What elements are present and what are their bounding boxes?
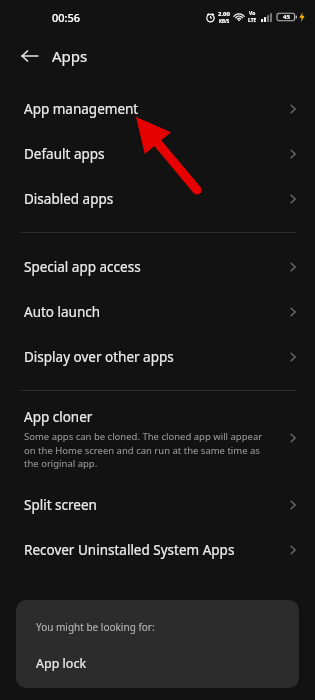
button[interactable]: Back: [13, 39, 47, 73]
staticText: App cloner: [24, 408, 93, 426]
staticText: LTE: [248, 17, 257, 24]
button[interactable]: Disabled apps: [0, 176, 315, 221]
staticText: Disabled apps: [24, 190, 114, 208]
staticText: 45: [283, 13, 290, 21]
staticText: Special app access: [24, 258, 141, 276]
button[interactable]: Default apps: [0, 131, 315, 176]
staticText: KB/S: [219, 18, 230, 24]
staticText: 2.00: [218, 10, 230, 18]
staticText: Split screen: [24, 496, 97, 514]
button[interactable]: Special app access: [0, 244, 315, 289]
button[interactable]: App cloner: [0, 400, 315, 476]
staticText: You might be looking for:: [36, 620, 155, 634]
button[interactable]: App lock: [16, 646, 299, 680]
button[interactable]: App management: [0, 86, 315, 131]
staticText: Some apps can be cloned. The cloned app …: [24, 430, 263, 469]
button[interactable]: Display over other apps: [0, 334, 315, 379]
staticText: Recover Uninstalled System Apps: [24, 541, 235, 559]
button[interactable]: Auto launch: [0, 289, 315, 334]
staticText: App lock: [36, 655, 87, 672]
staticText: App management: [24, 100, 139, 118]
button[interactable]: Recover Uninstalled System Apps: [0, 527, 315, 572]
staticText: Display over other apps: [24, 348, 174, 366]
button[interactable]: Split screen: [0, 482, 315, 527]
staticText: Auto launch: [24, 303, 101, 321]
staticText: Vo: [249, 10, 256, 17]
staticText: Default apps: [24, 145, 105, 163]
staticText: Apps: [52, 46, 88, 66]
staticText: 00:56: [52, 10, 81, 25]
